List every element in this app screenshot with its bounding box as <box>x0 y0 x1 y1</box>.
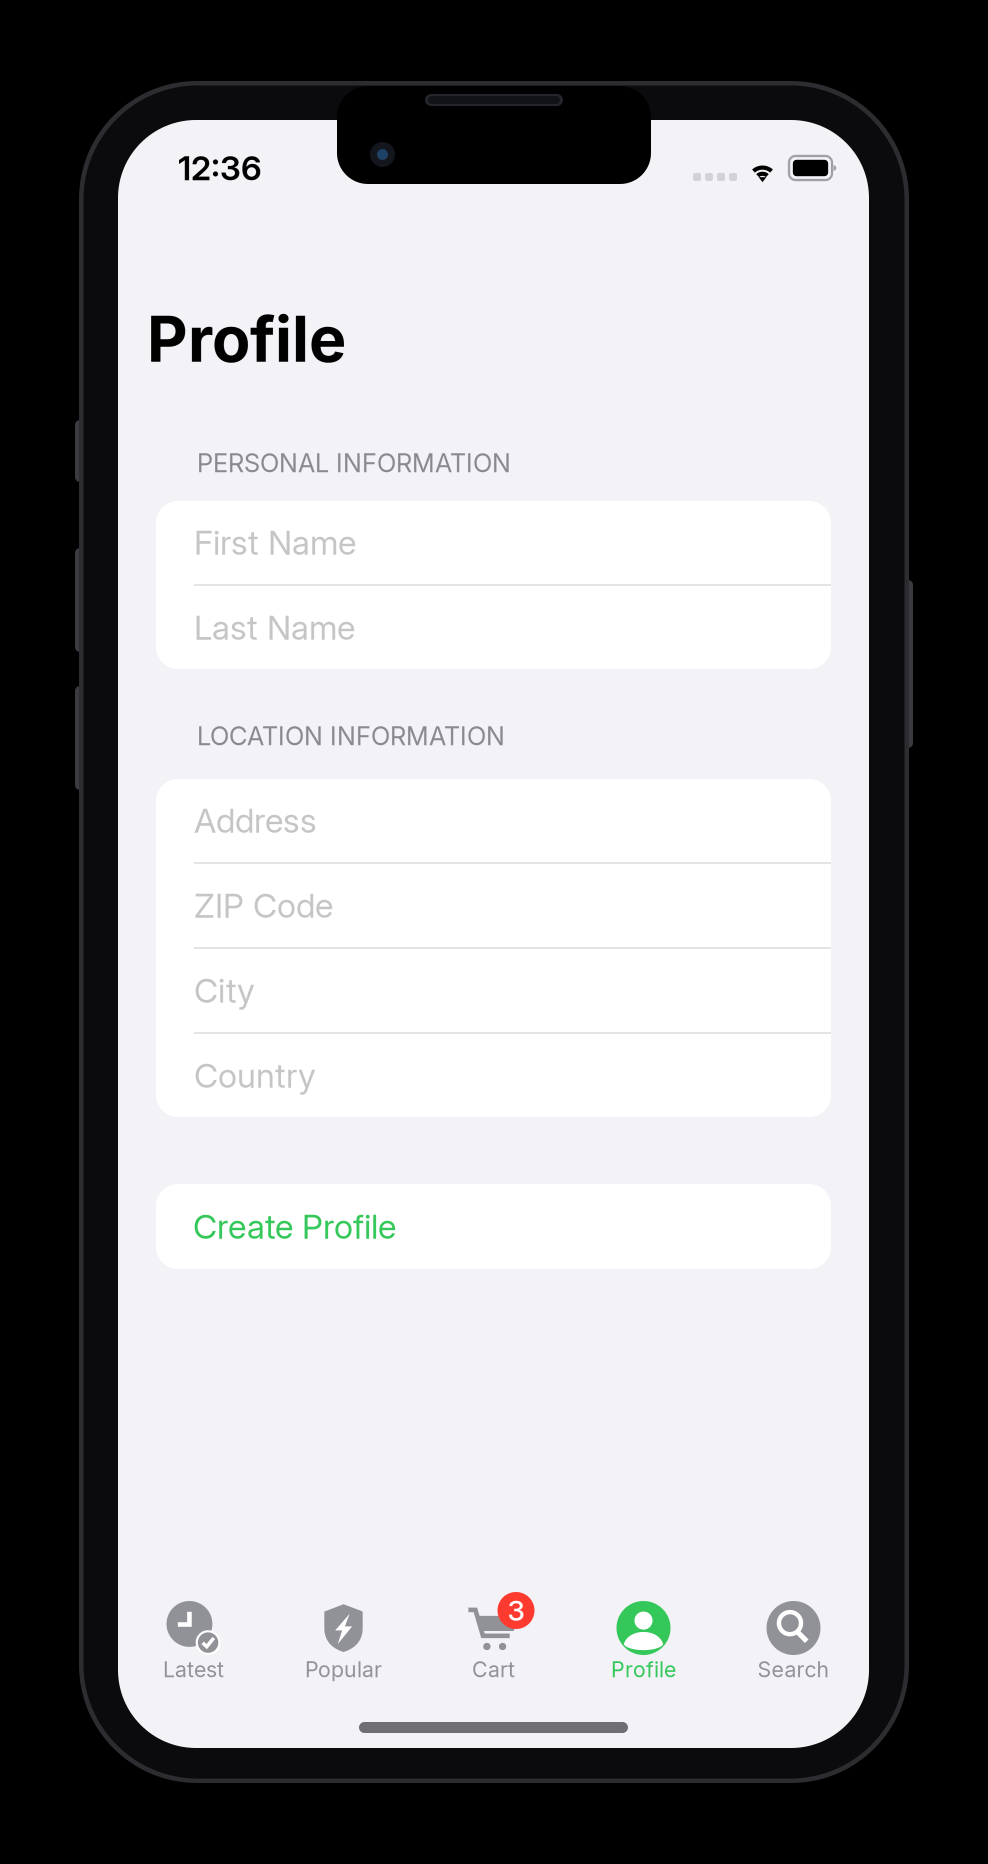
staticText: Last Name <box>194 608 355 647</box>
staticText: PERSONAL INFORMATION <box>197 448 511 478</box>
staticText: First Name <box>194 523 356 562</box>
staticText: Popular <box>305 1657 382 1682</box>
button[interactable]: First Name <box>156 501 831 584</box>
button[interactable]: Country <box>156 1034 831 1117</box>
staticText: Latest <box>163 1657 224 1682</box>
button[interactable]: Profile <box>568 1601 718 1685</box>
staticText: Cart <box>472 1657 515 1682</box>
staticText: ZIP Code <box>194 886 333 925</box>
button[interactable]: Address <box>156 779 831 862</box>
staticText: Search <box>757 1657 829 1682</box>
button[interactable]: Latest <box>118 1601 268 1685</box>
staticText: City <box>194 971 255 1010</box>
staticText: Create Profile <box>193 1207 396 1246</box>
button[interactable]: Create Profile <box>156 1184 831 1269</box>
staticText: Address <box>194 801 317 840</box>
staticText: Profile <box>147 302 346 376</box>
staticText: Profile <box>611 1657 676 1682</box>
button[interactable]: City <box>156 949 831 1032</box>
button[interactable]: Search <box>718 1601 868 1685</box>
staticText: 3 <box>507 1594 524 1627</box>
button[interactable]: 3 <box>418 1601 568 1685</box>
staticText: 12:36 <box>178 148 262 188</box>
staticText: Country <box>194 1056 316 1095</box>
button[interactable]: Last Name <box>156 586 831 669</box>
button[interactable]: Popular <box>268 1601 418 1685</box>
button[interactable]: ZIP Code <box>156 864 831 947</box>
staticText: LOCATION INFORMATION <box>197 721 505 751</box>
